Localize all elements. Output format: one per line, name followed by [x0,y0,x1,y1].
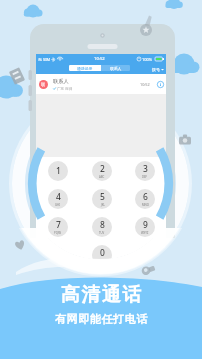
staticText: 9 [143,219,148,231]
button[interactable]: 联系人 [101,65,130,71]
button[interactable]: 6 [135,189,155,209]
button[interactable]: 7 [48,217,68,237]
staticText: 5 [100,191,105,203]
button[interactable]: 联 [36,74,166,94]
staticText: 6 [143,191,148,203]
staticText: 联系人 [53,78,69,85]
button[interactable]: 5 [92,189,112,209]
staticText: 8 [100,219,105,231]
staticText: 拨号 [152,67,160,72]
staticText: 1 [56,165,61,177]
staticText: TUV [99,231,105,235]
button[interactable]: 拨号 [152,67,164,72]
staticText: ABC [99,175,105,179]
staticText: 广东 深圳 [57,86,73,91]
staticText: DEF [142,175,148,179]
staticText: 10:52 [94,56,105,62]
staticText: 4 [56,191,61,203]
staticText: 高清通话 [60,283,142,307]
staticText: JKL [101,203,105,207]
staticText: 0 [100,247,105,259]
staticText: 通话记录 [77,66,93,71]
button[interactable]: 2 [92,161,112,181]
staticText: 7 [56,219,61,231]
staticText: 有网即能任打电话 [55,312,148,326]
button[interactable]: 4 [48,189,68,209]
button[interactable]: 8 [92,217,112,237]
button[interactable]: 1 [48,161,68,181]
staticText: 2 [100,163,105,175]
staticText: 联 [41,82,46,87]
staticText: 10:52 [140,82,150,87]
staticText: PQRS [54,231,62,235]
staticText: 无 SIM 卡 [38,57,56,62]
staticText: 100% [142,57,153,62]
button[interactable]: 通话记录 [69,65,101,71]
staticText: 3 [143,163,148,175]
button[interactable]: 0 [92,245,112,265]
button[interactable]: 3 [135,161,155,181]
staticText: MNO [142,203,149,207]
staticText: WXYZ [141,231,149,235]
button[interactable]: 9 [135,217,155,237]
staticText: 联系人 [110,66,122,71]
staticText: GHI [55,203,61,207]
button[interactable]: Info [157,81,164,88]
